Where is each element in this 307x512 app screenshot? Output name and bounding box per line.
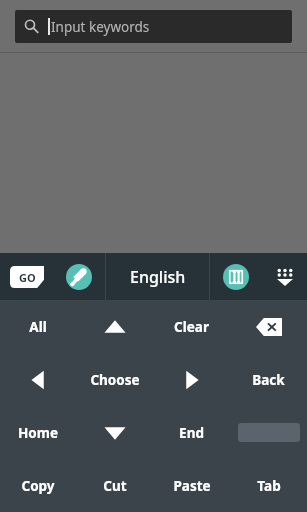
- button[interactable]: Resize keyboard: [210, 253, 262, 300]
- staticText: End: [179, 424, 204, 442]
- button[interactable]: Copy: [0, 459, 76, 512]
- button[interactable]: All: [0, 300, 76, 353]
- staticText: All: [29, 318, 47, 336]
- staticText: Paste: [173, 477, 211, 495]
- button[interactable]: Input keywords: [15, 10, 292, 43]
- button[interactable]: Back: [230, 353, 307, 406]
- staticText: English: [130, 266, 186, 288]
- button[interactable]: Voice input: [53, 253, 105, 300]
- button[interactable]: Down: [76, 406, 153, 459]
- staticText: Copy: [21, 477, 55, 495]
- staticText: Home: [18, 424, 58, 442]
- button[interactable]: Right: [153, 353, 230, 406]
- button[interactable]: Paste: [153, 459, 230, 512]
- button[interactable]: Hide keyboard: [262, 253, 307, 300]
- button[interactable]: Space: [230, 406, 307, 459]
- button[interactable]: Up: [76, 300, 153, 353]
- staticText: Tab: [257, 477, 281, 495]
- staticText: Input keywords: [51, 18, 150, 36]
- button[interactable]: Home: [0, 406, 76, 459]
- button[interactable]: Backspace: [230, 300, 307, 353]
- button[interactable]: Tab: [230, 459, 307, 512]
- button[interactable]: Choose: [76, 353, 153, 406]
- button[interactable]: End: [153, 406, 230, 459]
- button[interactable]: Cut: [76, 459, 153, 512]
- staticText: Clear: [174, 318, 209, 336]
- button[interactable]: Clear: [153, 300, 230, 353]
- button[interactable]: English: [106, 253, 209, 300]
- staticText: Choose: [90, 371, 140, 389]
- staticText: GO: [19, 270, 36, 285]
- button[interactable]: Left: [0, 353, 76, 406]
- button[interactable]: Go: [0, 253, 53, 300]
- staticText: Cut: [103, 477, 127, 495]
- staticText: Back: [252, 371, 285, 389]
